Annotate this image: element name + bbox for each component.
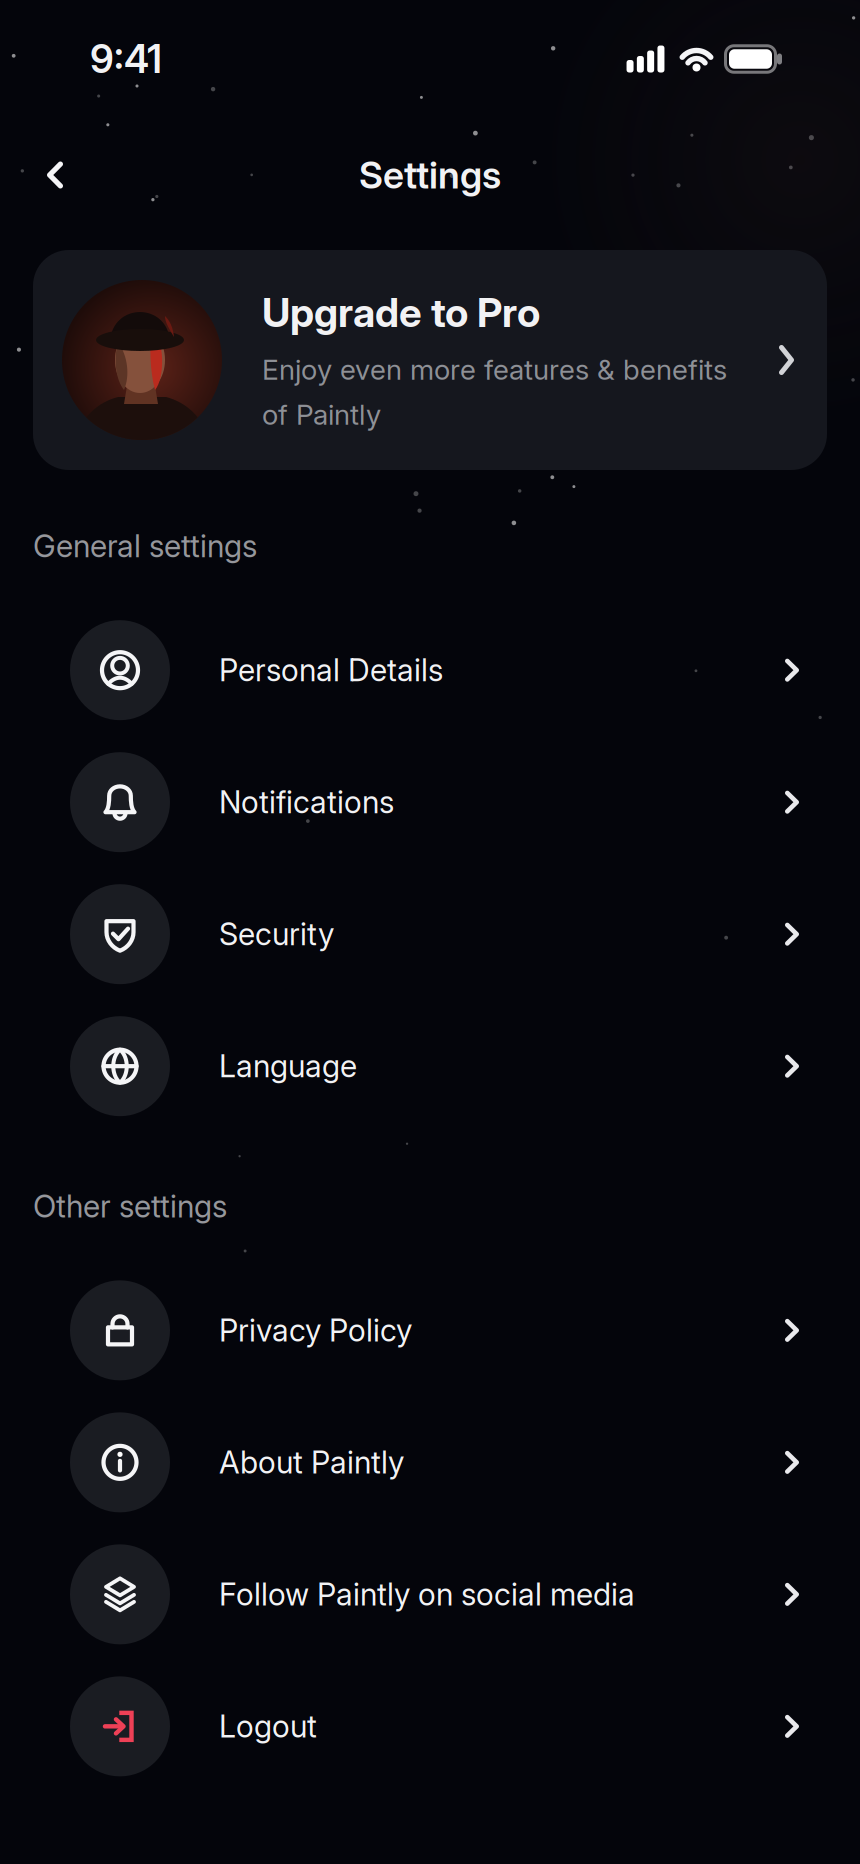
staticText: Notifications (219, 784, 394, 820)
staticText: Logout (219, 1708, 317, 1744)
button[interactable]: Notifications (0, 752, 860, 852)
button[interactable]: Upgrade to Pro (0, 250, 860, 470)
staticText: Security (219, 916, 334, 952)
staticText: Upgrade to Pro (262, 289, 540, 336)
button[interactable]: Logout (0, 1676, 860, 1776)
staticText: 9:41 (90, 36, 162, 82)
button[interactable]: Security (0, 884, 860, 984)
staticText: General settings (33, 528, 257, 564)
button[interactable]: Language (0, 1016, 860, 1116)
staticText: Follow Paintly on social media (219, 1576, 635, 1612)
staticText: About Paintly (219, 1444, 404, 1480)
staticText: Enjoy even more features & benefits (262, 353, 727, 386)
staticText: Settings (359, 153, 501, 197)
staticText: Personal Details (219, 652, 443, 688)
staticText: Language (219, 1048, 357, 1084)
staticText: Other settings (33, 1188, 227, 1224)
button[interactable]: Follow Paintly on social media (0, 1544, 860, 1644)
staticText: Privacy Policy (219, 1312, 412, 1348)
button[interactable]: Privacy Policy (0, 1280, 860, 1380)
button[interactable]: About Paintly (0, 1412, 860, 1512)
staticText: of Paintly (262, 398, 381, 431)
button[interactable]: Personal Details (0, 620, 860, 720)
button[interactable]: Back (0, 161, 63, 188)
